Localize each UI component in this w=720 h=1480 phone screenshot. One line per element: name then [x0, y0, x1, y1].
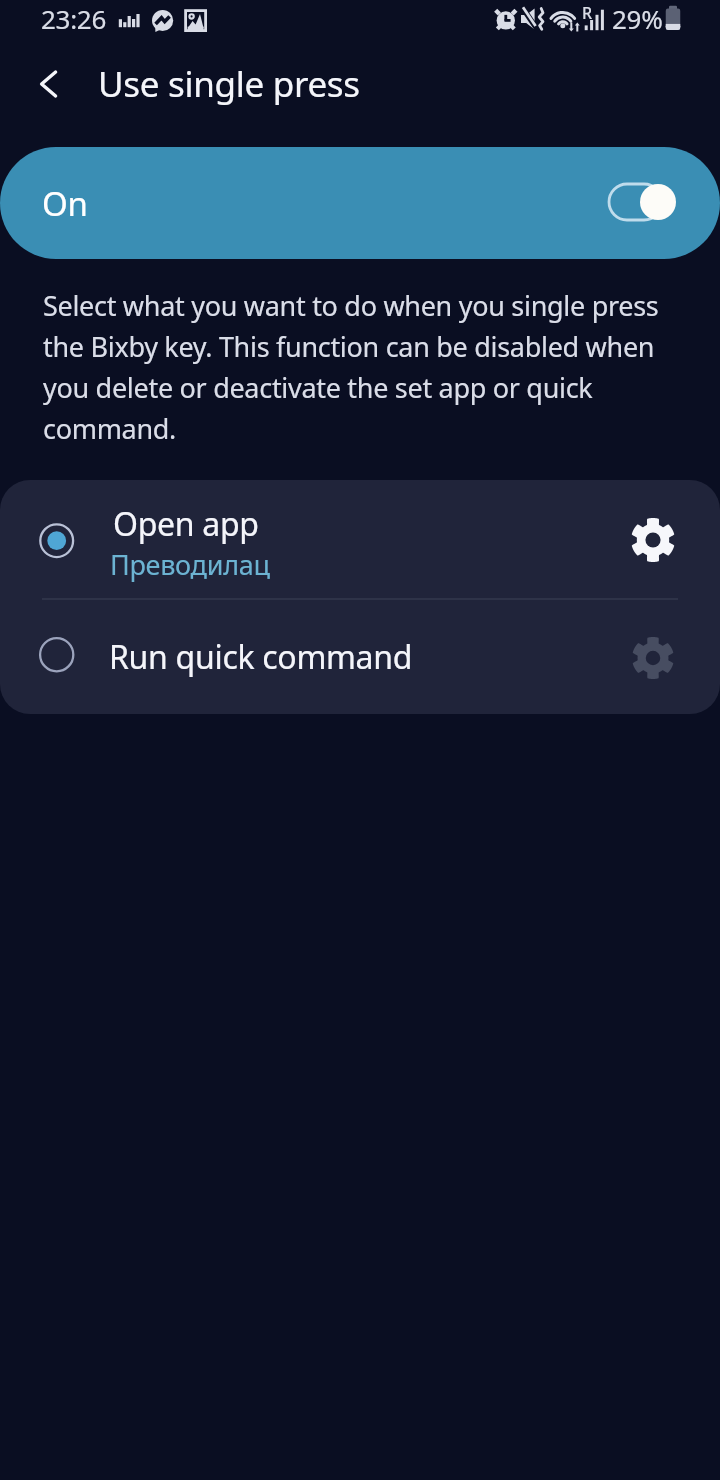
staticText: Run quick command — [109, 635, 413, 679]
staticText: Преводилац — [110, 546, 270, 583]
button[interactable]: Navigate up — [17, 57, 83, 123]
button[interactable]: Open app settings — [620, 507, 686, 573]
staticText: 29% — [612, 1, 663, 36]
button[interactable]: Run quick command — [0, 600, 720, 714]
button[interactable]: Open app — [0, 480, 720, 598]
staticText: Select what you want to do when you sing… — [43, 287, 667, 447]
staticText: On — [42, 181, 88, 226]
button[interactable]: Quick command settings — [620, 625, 686, 691]
staticText: R — [582, 2, 592, 24]
staticText: Use single press — [98, 60, 360, 108]
button[interactable]: On — [0, 147, 720, 259]
staticText: 23:26 — [41, 1, 106, 36]
staticText: Open app — [113, 502, 259, 546]
